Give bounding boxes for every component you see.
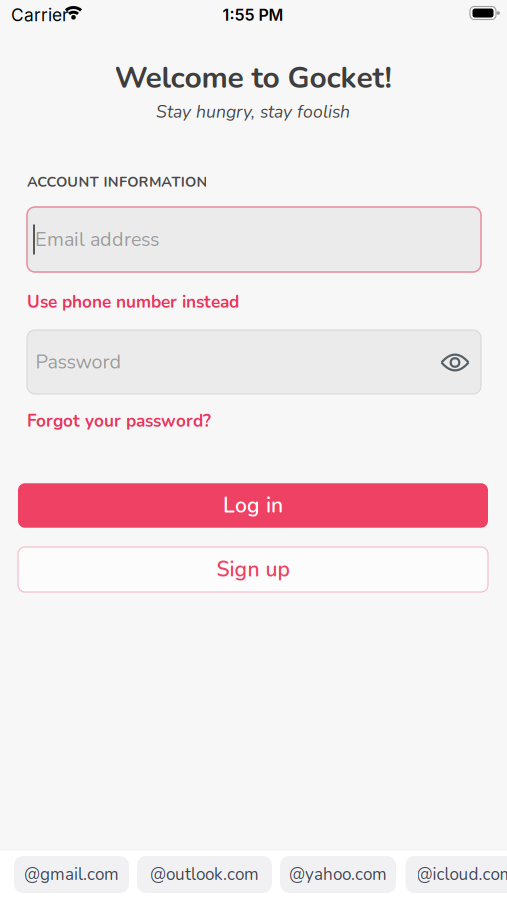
staticText: Carrier xyxy=(11,4,69,25)
staticText: @gmail.com xyxy=(24,863,119,886)
staticText: Sign up xyxy=(216,555,289,584)
staticText: Stay hungry, stay foolish xyxy=(156,100,350,124)
staticText: @outlook.com xyxy=(150,863,259,886)
staticText: Forgot your password? xyxy=(27,409,211,433)
staticText: Log in xyxy=(223,491,283,520)
staticText: Welcome to Gocket! xyxy=(114,57,391,98)
staticText: @yahoo.com xyxy=(289,863,387,886)
staticText: Password xyxy=(35,348,121,375)
staticText: @icloud.com xyxy=(416,863,507,886)
staticText: ACCOUNT INFORMATION xyxy=(27,172,207,192)
staticText: Use phone number instead xyxy=(27,290,239,314)
staticText: 1:55 PM xyxy=(222,5,283,25)
staticText: Email address xyxy=(35,226,159,253)
